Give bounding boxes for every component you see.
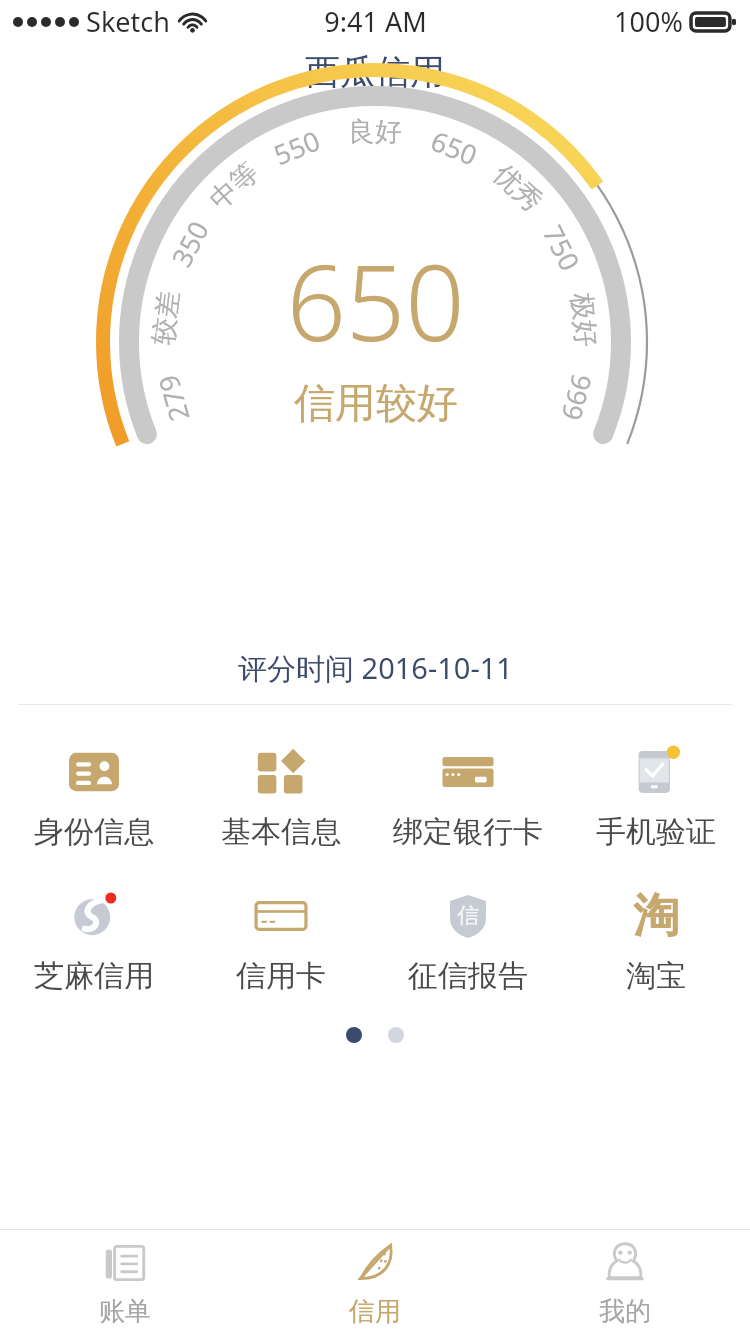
button[interactable]: 基本信息	[187, 737, 374, 857]
staticText: 750	[535, 218, 589, 277]
staticText: 我的	[599, 1295, 651, 1328]
staticText: 身份信息	[34, 813, 154, 851]
staticText: 650	[286, 230, 465, 372]
staticText: 100%	[614, 3, 683, 40]
button[interactable]: 淘	[562, 881, 750, 1001]
staticText: 较差	[146, 289, 186, 347]
button[interactable]: 绑定银行卡	[374, 737, 562, 857]
staticText: 9:41 AM	[324, 3, 427, 40]
staticText: 芝麻信用	[34, 957, 154, 995]
staticText: 淘宝	[626, 957, 686, 995]
staticText: 信	[457, 902, 479, 930]
staticText: 基本信息	[221, 813, 341, 851]
button[interactable]: 手机验证	[562, 737, 750, 857]
button[interactable]: 账单	[0, 1230, 250, 1334]
button[interactable]: 信	[374, 881, 562, 1001]
button[interactable]: 身份信息	[0, 737, 187, 857]
staticText: 优秀	[487, 157, 549, 219]
staticText: 信用卡	[236, 957, 326, 995]
staticText: 绑定银行卡	[393, 813, 543, 851]
staticText: 650	[426, 122, 483, 174]
button[interactable]: 信用卡	[187, 881, 374, 1001]
staticText: 999	[553, 370, 601, 425]
staticText: 账单	[99, 1295, 151, 1328]
staticText: 350	[162, 214, 217, 273]
button[interactable]: 芝麻信用	[0, 881, 187, 1001]
staticText: 淘	[633, 887, 679, 945]
button[interactable]: 信用	[250, 1230, 500, 1334]
button[interactable]: 我的	[500, 1230, 750, 1334]
staticText: 良好	[348, 115, 402, 149]
staticText: 征信报告	[408, 957, 528, 995]
staticText: 西瓜信用	[305, 50, 445, 94]
staticText: 极好	[564, 291, 604, 349]
staticText: 评分时间 2016-10-11	[238, 648, 513, 688]
staticText: 手机验证	[596, 813, 716, 851]
staticText: 279	[149, 371, 198, 426]
staticText: 550	[268, 121, 325, 173]
staticText: 中等	[203, 155, 265, 217]
staticText: 信用较好	[294, 378, 458, 430]
staticText: Sketch	[86, 3, 170, 40]
staticText: 信用	[349, 1295, 401, 1328]
